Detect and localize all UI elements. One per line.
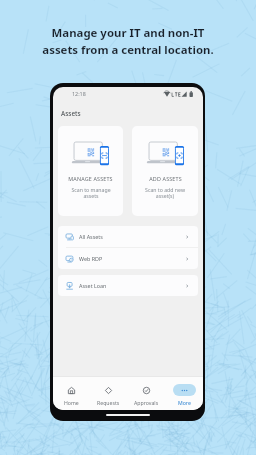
staticText: Scan to manage assets (71, 186, 111, 200)
staticText: MANAGE ASSETS (68, 175, 113, 182)
button[interactable]: Approvals (127, 377, 165, 410)
staticText: Asset Loan (79, 282, 107, 289)
staticText: Manage your IT and non-IT assets from a … (42, 25, 214, 58)
button[interactable]: Asset Loan (58, 275, 198, 296)
button[interactable]: MANAGE ASSETS (58, 126, 123, 216)
button[interactable]: Web RDP (58, 248, 198, 269)
staticText: ADD ASSETS (149, 175, 182, 182)
staticText: All Assets (79, 233, 103, 240)
button[interactable]: All Assets (58, 226, 198, 247)
staticText: Web RDP (79, 255, 103, 262)
staticText: 12:18 (72, 90, 86, 97)
staticText: Approvals (134, 399, 159, 406)
staticText: Scan to add new asset(s) (145, 186, 185, 200)
staticText: Requests (97, 399, 120, 406)
button[interactable]: Home (53, 377, 90, 410)
button[interactable]: More (165, 377, 203, 410)
staticText: Home (64, 399, 79, 406)
button[interactable]: ADD ASSETS (132, 126, 198, 216)
staticText: More (178, 399, 191, 406)
staticText: Assets (61, 109, 81, 118)
button[interactable]: Requests (90, 377, 127, 410)
